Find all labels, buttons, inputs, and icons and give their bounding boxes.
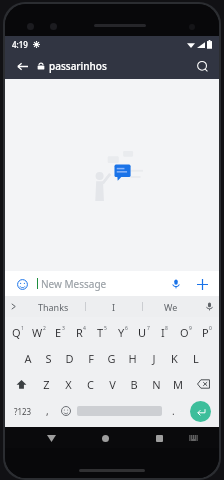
- staticText: ,: [46, 404, 49, 418]
- button[interactable]: B: [123, 371, 145, 397]
- staticText: .: [172, 404, 175, 418]
- button[interactable]: Back: [41, 428, 61, 448]
- staticText: Thanks: [38, 301, 69, 313]
- staticText: passarinhos: [49, 59, 107, 73]
- button[interactable]: Thanks: [21, 296, 85, 317]
- button[interactable]: Back: [13, 57, 31, 75]
- staticText: 2: [43, 325, 46, 332]
- staticText: 1: [21, 325, 24, 332]
- button[interactable]: Voice typing: [199, 296, 219, 317]
- staticText: H: [128, 351, 137, 366]
- button[interactable]: Z: [35, 371, 57, 397]
- staticText: I: [161, 325, 165, 340]
- staticText: I: [112, 301, 116, 313]
- button[interactable]: X: [57, 371, 79, 397]
- staticText: X: [65, 377, 72, 392]
- button[interactable]: K: [164, 345, 185, 371]
- button[interactable]: L: [185, 345, 206, 371]
- button[interactable]: F: [80, 345, 101, 371]
- button[interactable]: G: [101, 345, 122, 371]
- button[interactable]: T: [91, 319, 112, 345]
- staticText: J: [152, 351, 156, 366]
- button[interactable]: Recents: [149, 428, 169, 448]
- staticText: R: [76, 325, 83, 340]
- button[interactable]: More suggestions: [5, 296, 21, 317]
- button[interactable]: ?123: [7, 397, 39, 425]
- staticText: New Message: [41, 277, 107, 291]
- staticText: 6: [125, 325, 128, 332]
- button[interactable]: R: [70, 319, 91, 345]
- button[interactable]: S: [38, 345, 59, 371]
- staticText: 4:19: [12, 39, 28, 50]
- staticText: E: [55, 325, 62, 340]
- staticText: 0: [209, 325, 212, 332]
- button[interactable]: J: [143, 345, 164, 371]
- staticText: 8: [165, 325, 168, 332]
- button[interactable]: P: [196, 319, 217, 345]
- button[interactable]: C: [79, 371, 101, 397]
- button[interactable]: N: [145, 371, 167, 397]
- button[interactable]: Send: [190, 401, 211, 422]
- button[interactable]: Emoji: [13, 275, 31, 293]
- button[interactable]: D: [59, 345, 80, 371]
- button[interactable]: U: [133, 319, 154, 345]
- button[interactable]: I: [86, 296, 142, 317]
- button[interactable]: We: [143, 296, 199, 317]
- staticText: Y: [118, 325, 125, 340]
- staticText: G: [107, 351, 116, 366]
- staticText: Z: [43, 377, 50, 392]
- staticText: M: [173, 377, 183, 392]
- button[interactable]: O: [175, 319, 196, 345]
- staticText: D: [65, 351, 74, 366]
- button[interactable]: M: [167, 371, 189, 397]
- staticText: 5: [104, 325, 107, 332]
- staticText: V: [109, 377, 116, 392]
- button[interactable]: Voice input: [167, 275, 185, 293]
- button[interactable]: V: [101, 371, 123, 397]
- button[interactable]: Backspace: [189, 371, 217, 397]
- button[interactable]: Switch keyboard: [184, 429, 202, 447]
- staticText: A: [24, 351, 32, 366]
- button[interactable]: H: [122, 345, 143, 371]
- button[interactable]: Y: [112, 319, 133, 345]
- staticText: Q: [12, 325, 21, 340]
- button[interactable]: .: [164, 397, 183, 425]
- staticText: S: [45, 351, 52, 366]
- staticText: F: [88, 351, 94, 366]
- button[interactable]: Q: [7, 319, 28, 345]
- staticText: 9: [189, 325, 192, 332]
- staticText: W: [32, 325, 43, 340]
- button[interactable]: Home: [95, 428, 115, 448]
- staticText: B: [130, 377, 138, 392]
- staticText: C: [87, 377, 94, 392]
- button[interactable]: I: [154, 319, 175, 345]
- staticText: 7: [147, 325, 150, 332]
- button[interactable]: Search: [193, 57, 211, 75]
- button[interactable]: A: [17, 345, 38, 371]
- staticText: N: [152, 377, 161, 392]
- staticText: O: [180, 325, 189, 340]
- staticText: L: [193, 351, 199, 366]
- button[interactable]: W: [28, 319, 49, 345]
- button[interactable]: Add attachment: [193, 275, 211, 293]
- button[interactable]: Shift: [7, 371, 35, 397]
- button[interactable]: E: [49, 319, 70, 345]
- staticText: U: [138, 325, 147, 340]
- staticText: P: [202, 325, 209, 340]
- staticText: 4: [83, 325, 86, 332]
- button[interactable]: Emoji keyboard: [56, 397, 75, 425]
- staticText: ?123: [14, 406, 32, 417]
- staticText: T: [97, 325, 104, 340]
- button[interactable]: ,: [39, 397, 56, 425]
- staticText: K: [171, 351, 178, 366]
- staticText: We: [164, 301, 178, 313]
- staticText: 3: [62, 325, 65, 332]
